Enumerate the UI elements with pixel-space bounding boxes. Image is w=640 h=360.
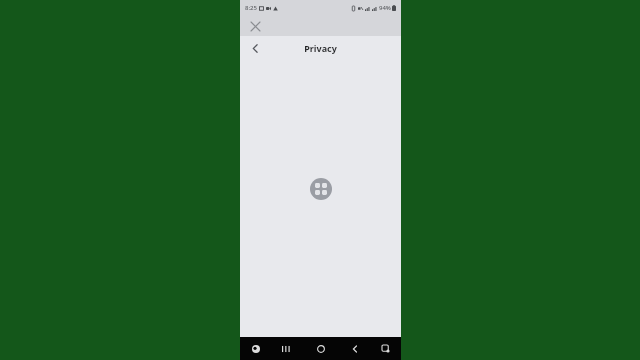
- staticText: 94%: [379, 4, 391, 12]
- button[interactable]: Close: [245, 16, 265, 36]
- button[interactable]: Home: [302, 337, 339, 360]
- button[interactable]: Screenshot: [370, 337, 401, 360]
- button[interactable]: Recents: [271, 337, 302, 360]
- staticText: 8:25: [245, 4, 257, 12]
- staticText: Privacy: [304, 42, 337, 54]
- button[interactable]: Keyboard: [240, 337, 271, 360]
- button[interactable]: Back: [339, 337, 370, 360]
- button[interactable]: App icon: [310, 178, 332, 200]
- button[interactable]: Back: [244, 37, 266, 59]
